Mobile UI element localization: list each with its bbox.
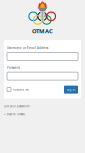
staticText: OTMAC — [32, 27, 53, 35]
button[interactable]: ← Back to OTMAC — [4, 113, 26, 116]
staticText: Password — [7, 66, 20, 70]
staticText: Username or Email Address — [7, 46, 48, 50]
staticText: Lost your password? — [4, 105, 30, 108]
staticText: ← Back to OTMAC — [4, 113, 26, 116]
staticText: Remember Me — [13, 88, 29, 91]
button[interactable]: Lost your password? — [4, 105, 30, 108]
button[interactable]: Remember Me — [7, 88, 29, 92]
staticText: Log In — [66, 88, 75, 91]
button[interactable]: Log In — [64, 86, 78, 94]
